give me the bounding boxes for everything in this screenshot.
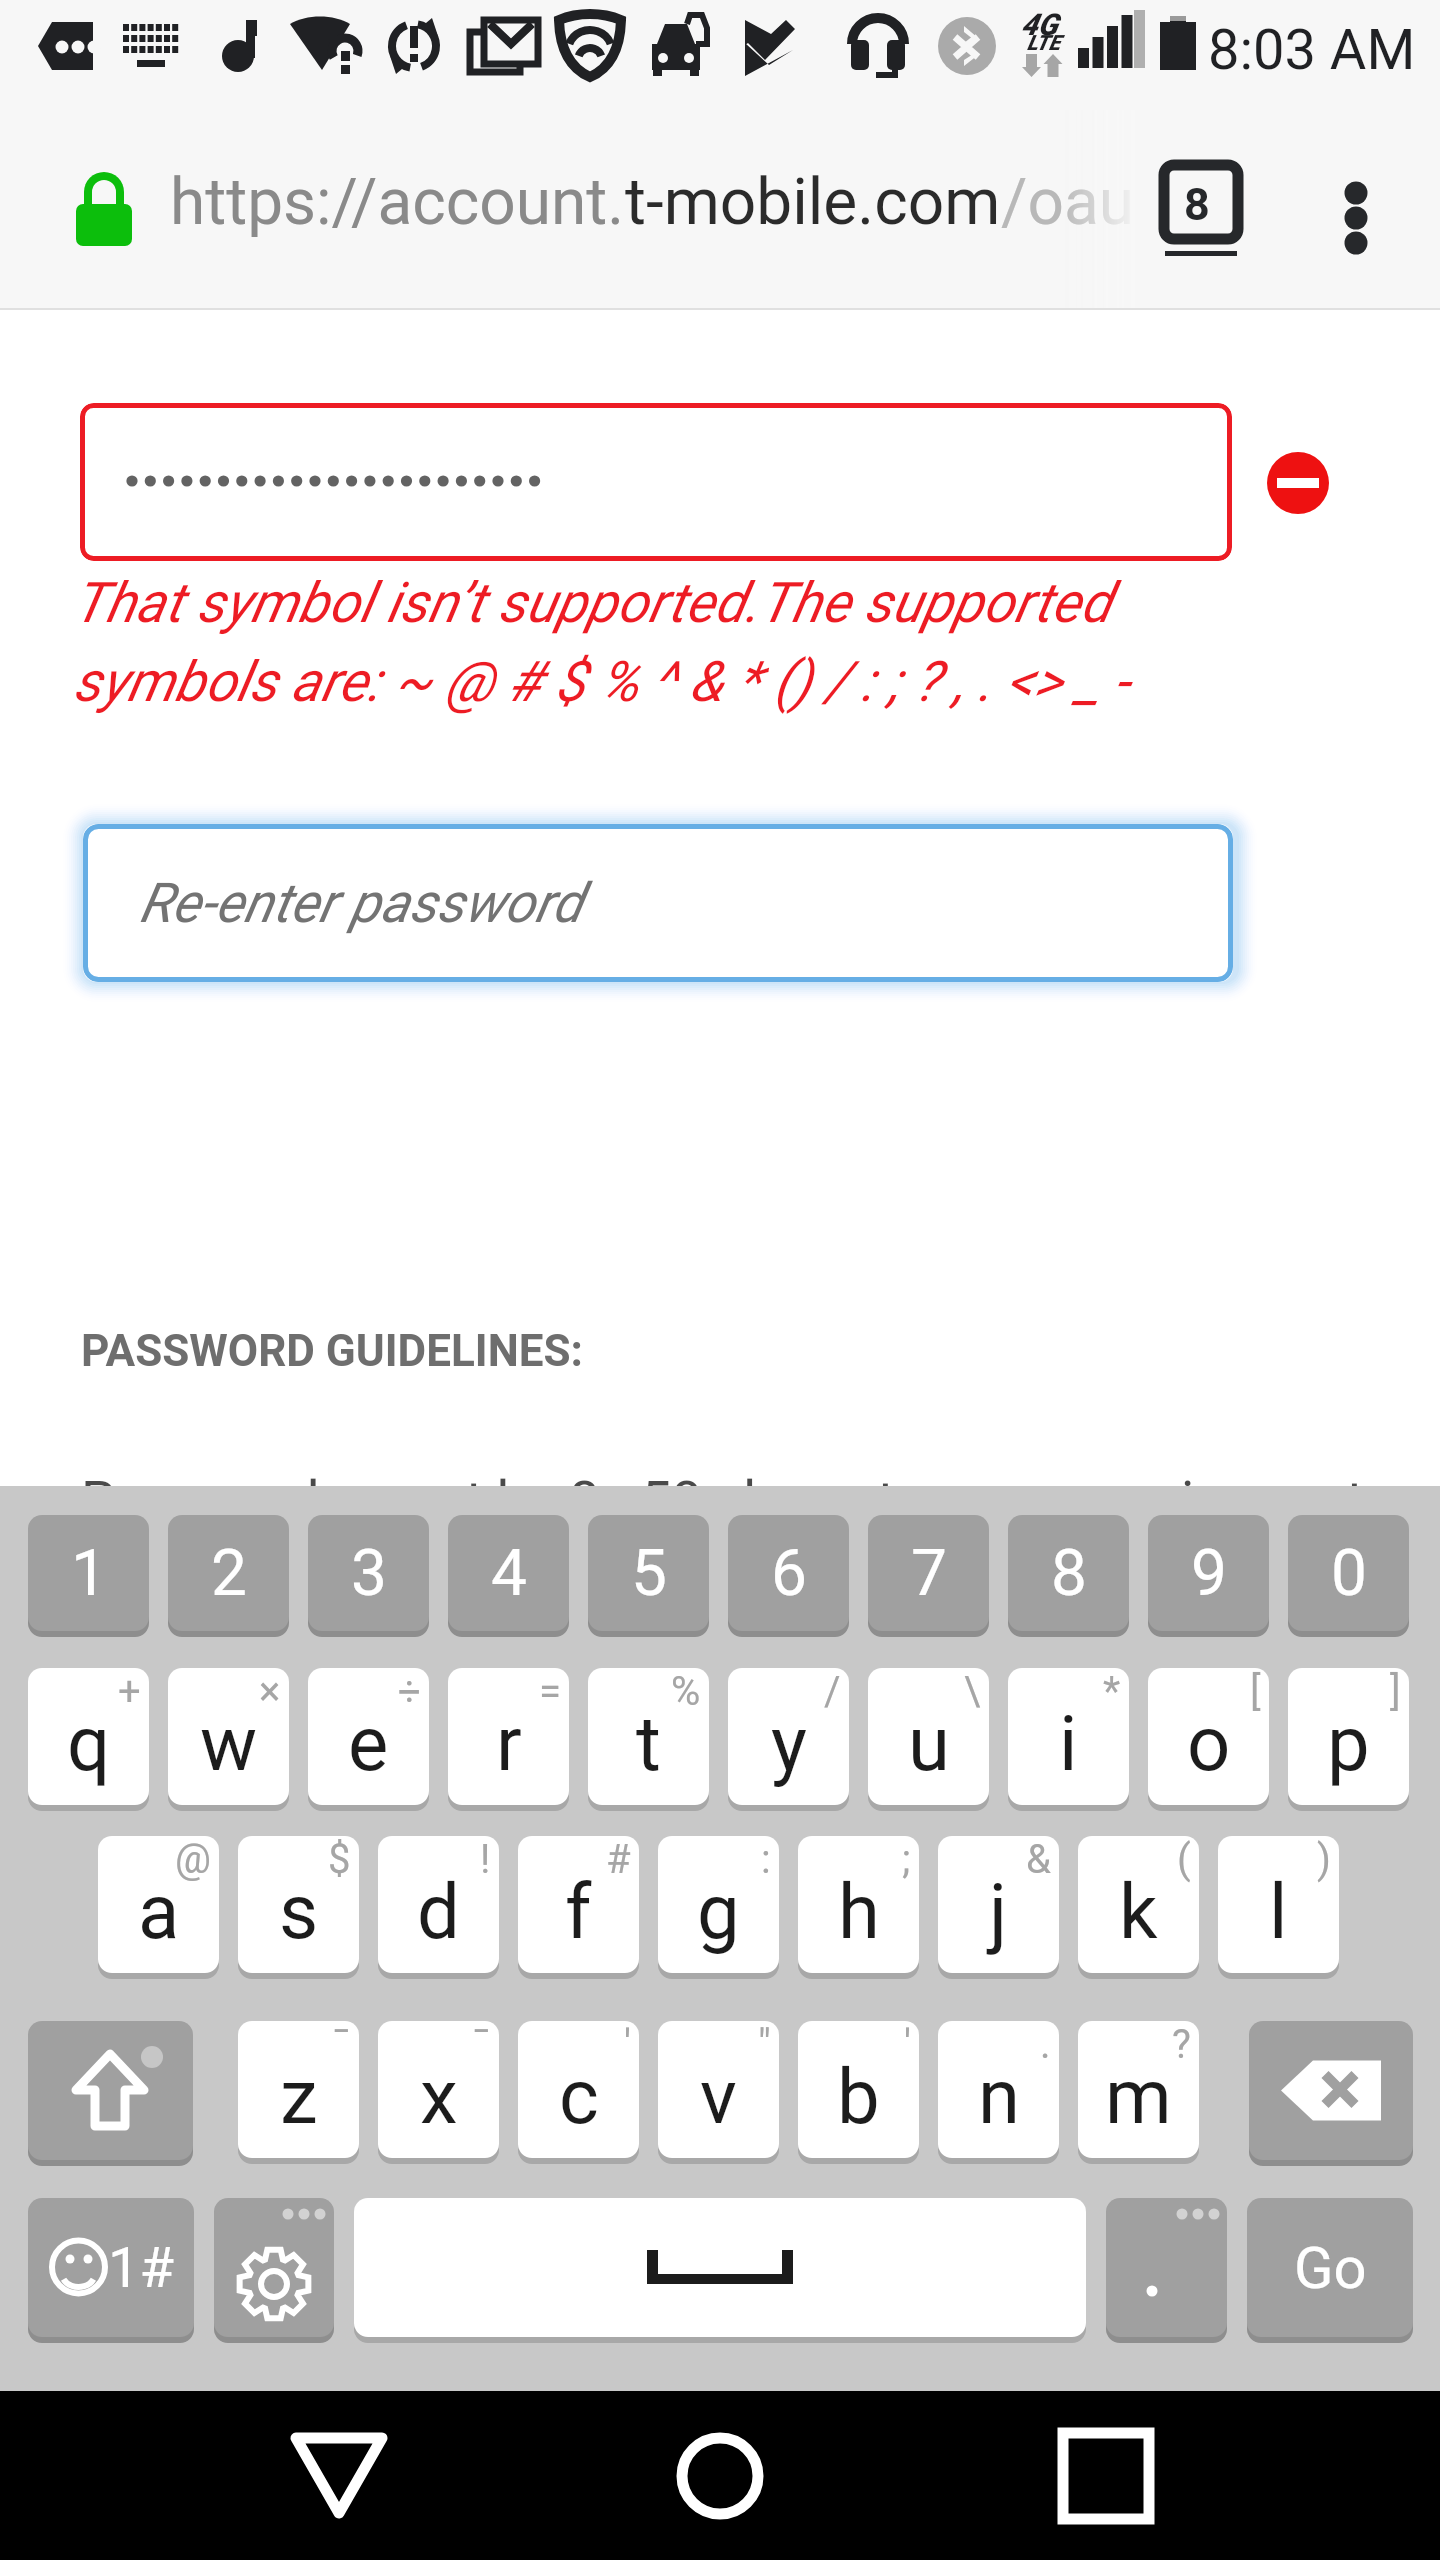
button[interactable]: ' — [518, 2021, 639, 2158]
staticText: + — [118, 1668, 141, 1715]
button[interactable]: ( — [1078, 1836, 1199, 1973]
staticText: 3 — [351, 1536, 387, 1611]
button[interactable]: 8 — [1008, 1515, 1129, 1631]
staticText: j — [989, 1867, 1008, 1956]
staticText: Passwords must be 8 - 50 characters per … — [81, 1469, 1392, 1532]
button[interactable]: Home — [620, 2421, 820, 2531]
staticText: k — [1119, 1867, 1158, 1956]
button[interactable]: : — [658, 1836, 779, 1973]
staticText: ; — [902, 1836, 911, 1883]
staticText: h — [838, 1867, 880, 1956]
staticText: @ — [175, 1836, 211, 1883]
button[interactable]: " — [658, 2021, 779, 2158]
button[interactable]: + — [28, 1668, 149, 1805]
button[interactable]: Address bar — [40, 132, 1140, 287]
button[interactable]: Shift — [28, 2021, 193, 2160]
button[interactable]: More options — [1310, 155, 1410, 265]
staticText: t-mobile.com — [625, 165, 1001, 240]
staticText: ] — [1390, 1668, 1401, 1715]
button[interactable]: Settings — [214, 2198, 334, 2337]
button[interactable]: ) — [1218, 1836, 1339, 1973]
staticText: ÷ — [398, 1668, 421, 1715]
button[interactable]: = — [448, 1668, 569, 1805]
button[interactable]: ' — [798, 2021, 919, 2158]
staticText: r — [496, 1699, 522, 1788]
button[interactable]: % — [588, 1668, 709, 1805]
staticText: l — [1269, 1867, 1288, 1956]
button[interactable]: 6 — [728, 1515, 849, 1631]
staticText: ¯ — [332, 2021, 351, 2068]
button[interactable] — [80, 403, 1232, 561]
button[interactable]: ¯ — [238, 2021, 359, 2158]
staticText: 7 — [911, 1536, 947, 1611]
button[interactable]: 0 — [1288, 1515, 1409, 1631]
staticText: ( — [1177, 1836, 1191, 1883]
staticText: # — [606, 1836, 631, 1883]
staticText: b — [837, 2052, 880, 2141]
button[interactable]: Period — [1106, 2198, 1227, 2337]
staticText: https://account. — [170, 165, 625, 240]
staticText: That symbol isn’t supported.The supporte… — [73, 570, 1129, 714]
button[interactable]: ¯ — [378, 2021, 499, 2158]
button[interactable]: ! — [378, 1836, 499, 1973]
staticText: a — [138, 1867, 180, 1956]
button[interactable]: 2 — [168, 1515, 289, 1631]
button[interactable]: . — [938, 2021, 1059, 2158]
staticText: s — [279, 1867, 319, 1956]
button[interactable]: @ — [98, 1836, 219, 1973]
button[interactable]: 4 — [448, 1515, 569, 1631]
button[interactable]: Go — [1247, 2198, 1413, 2337]
staticText: ' — [624, 2021, 631, 2068]
button[interactable]: \ — [868, 1668, 989, 1805]
staticText: f — [565, 1867, 592, 1956]
staticText: Go — [1294, 2234, 1367, 2302]
staticText: m — [1105, 2052, 1172, 2141]
staticText: " — [758, 2021, 771, 2068]
staticText: 9 — [1191, 1536, 1227, 1611]
button[interactable]: Back — [240, 2421, 440, 2531]
staticText: PASSWORD GUIDELINES: — [81, 1325, 583, 1377]
button[interactable]: ? — [1078, 2021, 1199, 2158]
staticText: y — [771, 1699, 807, 1788]
button[interactable]: Recent apps — [1001, 2421, 1201, 2531]
button[interactable]: $ — [238, 1836, 359, 1973]
button[interactable]: 1 — [28, 1515, 149, 1631]
button[interactable]: Re-enter password — [83, 824, 1233, 982]
button[interactable]: [ — [1148, 1668, 1269, 1805]
button[interactable]: Emoji and symbols — [28, 2198, 194, 2337]
staticText: z — [280, 2052, 318, 2141]
staticText: [ — [1250, 1668, 1261, 1715]
button[interactable]: ÷ — [308, 1668, 429, 1805]
staticText: / — [824, 1668, 841, 1715]
button[interactable]: ; — [798, 1836, 919, 1973]
staticText: o — [1187, 1699, 1231, 1788]
staticText: u — [908, 1699, 950, 1788]
button[interactable]: # — [518, 1836, 639, 1973]
button[interactable]: / — [728, 1668, 849, 1805]
button[interactable]: Space — [354, 2198, 1086, 2337]
staticText: w — [200, 1699, 258, 1788]
button[interactable]: 7 — [868, 1515, 989, 1631]
staticText: LTE — [1027, 31, 1061, 56]
button[interactable]: 3 — [308, 1515, 429, 1631]
staticText: g — [697, 1867, 740, 1956]
staticText: & — [1026, 1836, 1051, 1883]
staticText: e — [348, 1699, 389, 1788]
staticText: d — [417, 1867, 460, 1956]
staticText: x — [420, 2052, 458, 2141]
button[interactable]: ] — [1288, 1668, 1409, 1805]
staticText: ! — [480, 1836, 491, 1883]
staticText: 6 — [771, 1536, 807, 1611]
staticText: : — [761, 1836, 771, 1883]
button[interactable]: Backspace — [1249, 2021, 1413, 2160]
staticText: ? — [1172, 2021, 1191, 2068]
staticText: p — [1327, 1699, 1370, 1788]
staticText: 8 — [1051, 1536, 1087, 1611]
button[interactable]: Tabs — [1155, 158, 1245, 268]
button[interactable]: × — [168, 1668, 289, 1805]
staticText: 8:03 AM — [1208, 17, 1416, 83]
button[interactable]: * — [1008, 1668, 1129, 1805]
button[interactable]: 9 — [1148, 1515, 1269, 1631]
button[interactable]: 5 — [588, 1515, 709, 1631]
button[interactable]: & — [938, 1836, 1059, 1973]
